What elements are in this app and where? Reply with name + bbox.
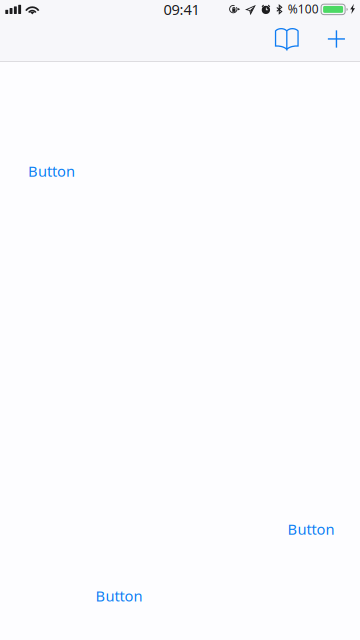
button[interactable]: Button <box>89 578 148 614</box>
button[interactable]: Button <box>281 511 340 547</box>
button[interactable]: Button <box>22 153 81 189</box>
staticText: Button <box>287 519 334 539</box>
staticText: Button <box>95 586 142 606</box>
button[interactable]: Add <box>314 20 358 58</box>
staticText: %100 <box>288 1 319 17</box>
button[interactable]: Library <box>265 20 309 58</box>
staticText: Button <box>28 161 75 181</box>
staticText: 09:41 <box>164 0 200 19</box>
